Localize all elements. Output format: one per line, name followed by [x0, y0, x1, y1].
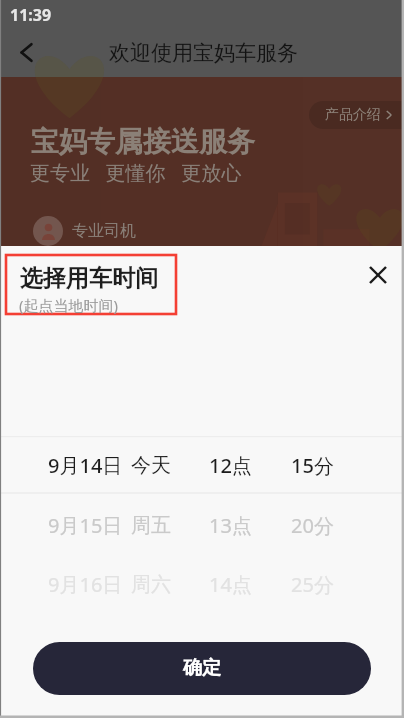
staticText: 14点 — [209, 571, 252, 598]
staticText: 确定 — [183, 656, 221, 680]
staticText: 15分 — [291, 452, 334, 479]
staticText: 专业司机 — [72, 221, 136, 241]
button[interactable]: Close — [352, 249, 404, 301]
staticText: 9月15日 — [48, 512, 123, 539]
staticText: 周六 — [131, 572, 171, 597]
staticText: (起点当地时间) — [19, 295, 119, 315]
staticText: 9月14日 — [48, 452, 123, 479]
staticText: 11:39 — [10, 4, 52, 26]
staticText: 更专业 更懂你 更放心 — [30, 159, 242, 186]
staticText: 周五 — [131, 513, 171, 538]
staticText: 今天 — [131, 453, 171, 478]
staticText: 20分 — [291, 512, 334, 539]
staticText: 9月16日 — [48, 571, 123, 598]
staticText: 25分 — [291, 571, 334, 598]
staticText: 宝妈专属接送服务 — [31, 124, 255, 159]
button[interactable]: Back — [4, 30, 48, 74]
staticText: 12点 — [209, 452, 252, 479]
staticText: 选择用车时间 — [20, 264, 158, 293]
staticText: 产品介绍 — [325, 106, 381, 124]
staticText: 13点 — [209, 512, 252, 539]
button[interactable]: 确定 — [33, 642, 371, 695]
button[interactable]: 产品介绍 — [309, 101, 404, 129]
staticText: 欢迎使用宝妈车服务 — [109, 40, 298, 66]
